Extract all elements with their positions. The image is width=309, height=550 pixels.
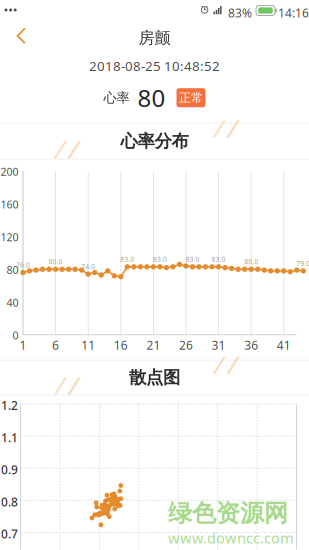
staticText: 200 bbox=[0, 165, 18, 179]
staticText: 83.0 bbox=[212, 255, 226, 264]
staticText: 2018-08-25 10:48:52 bbox=[89, 57, 220, 75]
staticText: 1 bbox=[19, 337, 26, 353]
staticText: 散点图 bbox=[129, 367, 180, 388]
staticText: www.downcc.com bbox=[168, 528, 294, 548]
staticText: 0.9 bbox=[1, 462, 18, 478]
staticText: 6 bbox=[52, 337, 59, 353]
staticText: 16 bbox=[114, 337, 128, 353]
staticText: 120 bbox=[0, 230, 18, 244]
staticText: 11 bbox=[81, 337, 95, 353]
staticText: 83.0 bbox=[153, 255, 167, 264]
staticText: 41 bbox=[277, 337, 291, 353]
staticText: 0.8 bbox=[1, 494, 18, 510]
staticText: 79.0 bbox=[296, 259, 309, 268]
staticText: 房颤 bbox=[138, 28, 170, 48]
staticText: 0 bbox=[12, 328, 18, 342]
staticText: 正常 bbox=[179, 90, 203, 105]
staticText: 83.0 bbox=[120, 255, 134, 264]
staticText: 160 bbox=[0, 197, 18, 211]
staticText: 83.0 bbox=[185, 255, 199, 264]
staticText: 1.2 bbox=[1, 397, 18, 413]
staticText: 14:16 bbox=[278, 5, 309, 21]
staticText: 36 bbox=[244, 337, 258, 353]
staticText: 80.0 bbox=[49, 257, 63, 266]
staticText: 40 bbox=[6, 295, 18, 310]
staticText: 0.7 bbox=[1, 526, 18, 542]
staticText: 31 bbox=[212, 337, 226, 353]
staticText: 80 bbox=[6, 263, 18, 277]
staticText: 26 bbox=[179, 337, 193, 353]
staticText: 心率分布 bbox=[120, 131, 188, 152]
staticText: 绿色资源网 bbox=[168, 499, 288, 528]
staticText: 83% bbox=[228, 5, 252, 21]
staticText: 1.1 bbox=[1, 430, 18, 445]
staticText: 80 bbox=[137, 82, 165, 114]
staticText: 76.0 bbox=[16, 260, 30, 269]
staticText: 74.0 bbox=[81, 262, 95, 271]
button[interactable]: Back bbox=[0, 23, 40, 48]
staticText: 心率 bbox=[103, 89, 129, 106]
staticText: 21 bbox=[146, 337, 160, 353]
staticText: 80.0 bbox=[244, 257, 258, 266]
